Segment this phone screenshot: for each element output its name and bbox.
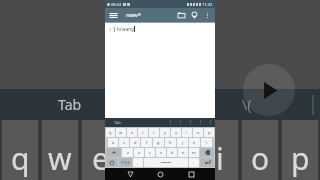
button[interactable]: b (167, 148, 177, 157)
button[interactable]: v (156, 148, 166, 157)
staticText: j (182, 140, 184, 145)
staticText: Tab (114, 120, 121, 125)
button[interactable]: u (171, 128, 181, 137)
button[interactable]: t (149, 128, 159, 137)
button[interactable]: a (108, 138, 118, 147)
staticText: m (192, 150, 196, 155)
staticText: r (142, 130, 144, 135)
staticText: d (134, 140, 137, 145)
staticText: t (153, 130, 155, 135)
button[interactable]: s (119, 138, 129, 147)
staticText: x (138, 150, 141, 155)
button[interactable]: Recent apps (185, 168, 197, 180)
staticText: f (146, 140, 148, 145)
button[interactable]: Home (154, 168, 166, 180)
staticText: u (175, 130, 178, 135)
button[interactable]: p (204, 128, 214, 137)
button[interactable]: Navigation menu (108, 10, 118, 20)
button[interactable]: . (189, 158, 199, 167)
staticText: 1 (109, 27, 112, 32)
staticText: ?123 (121, 160, 130, 165)
button[interactable]: , (133, 158, 143, 167)
staticText: i (216, 138, 224, 179)
button[interactable]: Play video (243, 64, 295, 116)
button[interactable]: Emoji (106, 158, 118, 167)
staticText: e (131, 130, 134, 135)
button[interactable]: j (177, 138, 188, 147)
staticText: a (112, 140, 115, 145)
staticText: o (197, 130, 200, 135)
button[interactable]: Location (189, 10, 200, 21)
button[interactable]: h (165, 138, 176, 147)
button[interactable]: e (127, 128, 137, 137)
button[interactable]: Space (144, 158, 188, 167)
staticText: h (169, 140, 172, 145)
staticText: p (208, 130, 211, 135)
staticText: hi wang (117, 26, 134, 32)
staticText: i (186, 130, 188, 135)
staticText: b (171, 150, 174, 155)
button[interactable]: Enter (200, 158, 214, 167)
button[interactable]: q (106, 128, 115, 137)
button[interactable]: w (116, 128, 126, 137)
staticText: e (92, 138, 109, 179)
staticText: g (157, 140, 160, 145)
staticText: v (160, 150, 163, 155)
button[interactable]: n (178, 148, 188, 157)
staticText: . (193, 160, 195, 165)
staticText: y (164, 130, 167, 135)
button[interactable]: z (122, 148, 133, 157)
button[interactable]: m (189, 148, 199, 157)
button[interactable]: l (201, 138, 212, 147)
button[interactable]: Backspace (200, 148, 214, 157)
staticText: n (182, 150, 185, 155)
staticText: Tab (58, 95, 82, 114)
staticText: c (149, 150, 151, 155)
button[interactable]: More options (202, 10, 212, 20)
staticText: 11:33 (202, 2, 213, 7)
staticText: q (11, 138, 30, 179)
staticText: l (206, 140, 208, 145)
staticText: w (48, 138, 72, 179)
button[interactable]: ?123 (119, 158, 132, 167)
button[interactable]: Shift (106, 148, 121, 157)
button[interactable]: x (134, 148, 144, 157)
button[interactable]: Back (124, 168, 136, 180)
button[interactable]: c (145, 148, 155, 157)
staticText: k (193, 140, 196, 145)
button[interactable]: f (141, 138, 152, 147)
button[interactable]: k (189, 138, 200, 147)
staticText: new* (126, 11, 141, 19)
staticText: z (127, 150, 129, 155)
staticText: , (137, 160, 139, 165)
staticText: w (119, 130, 123, 135)
button[interactable]: o (193, 128, 203, 137)
staticText: s (123, 140, 125, 145)
staticText: \( (242, 95, 252, 114)
staticText: 08:04 (111, 2, 122, 7)
button[interactable]: g (153, 138, 164, 147)
button[interactable]: y (160, 128, 170, 137)
staticText: o (251, 138, 270, 179)
button[interactable]: i (182, 128, 192, 137)
button[interactable]: d (130, 138, 140, 147)
button[interactable]: Open folder (176, 10, 187, 21)
staticText: q (109, 130, 112, 135)
button[interactable]: r (138, 128, 148, 137)
staticText: p (291, 138, 310, 179)
